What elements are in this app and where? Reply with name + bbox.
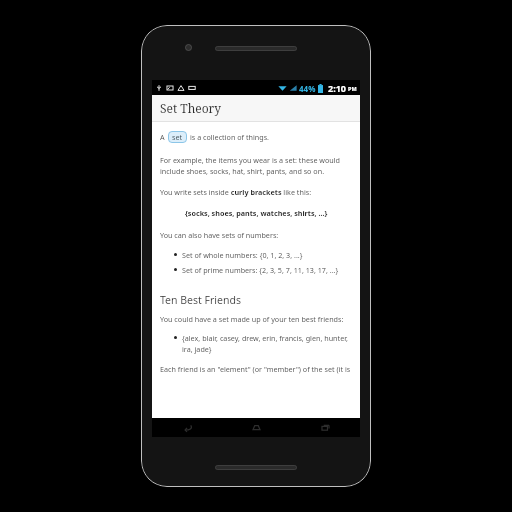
button[interactable]: Home [222,418,291,437]
staticText: Set of prime numbers: {2, 3, 5, 7, 11, 1… [182,265,339,275]
staticText: is a collection of things. [190,132,269,142]
staticText: Each friend is an "element" (or "member"… [160,364,351,374]
staticText: {socks, shoes, pants, watches, shirts, .… [185,208,328,218]
staticText: {alex, blair, casey, drew, erin, francis… [182,333,352,354]
button[interactable]: set [168,131,187,143]
staticText: Set Theory [160,100,222,116]
staticText: Ten Best Friends [160,293,241,307]
staticText: Set of whole numbers: {0, 1, 2, 3, ...} [182,250,303,260]
staticText: You could have a set made up of your ten… [160,314,344,324]
staticText: You can also have sets of numbers: [160,230,279,240]
staticText: 44% [299,83,316,94]
button[interactable]: Back [152,418,222,437]
button[interactable]: Recent apps [291,418,360,437]
staticText: 2:10 [328,82,346,94]
staticText: PM [348,85,357,92]
staticText: set [172,132,183,142]
staticText: You write sets inside curly brackets lik… [160,187,312,197]
staticText: For example, the items you wear is a set… [160,155,352,176]
staticText: A [160,132,165,142]
